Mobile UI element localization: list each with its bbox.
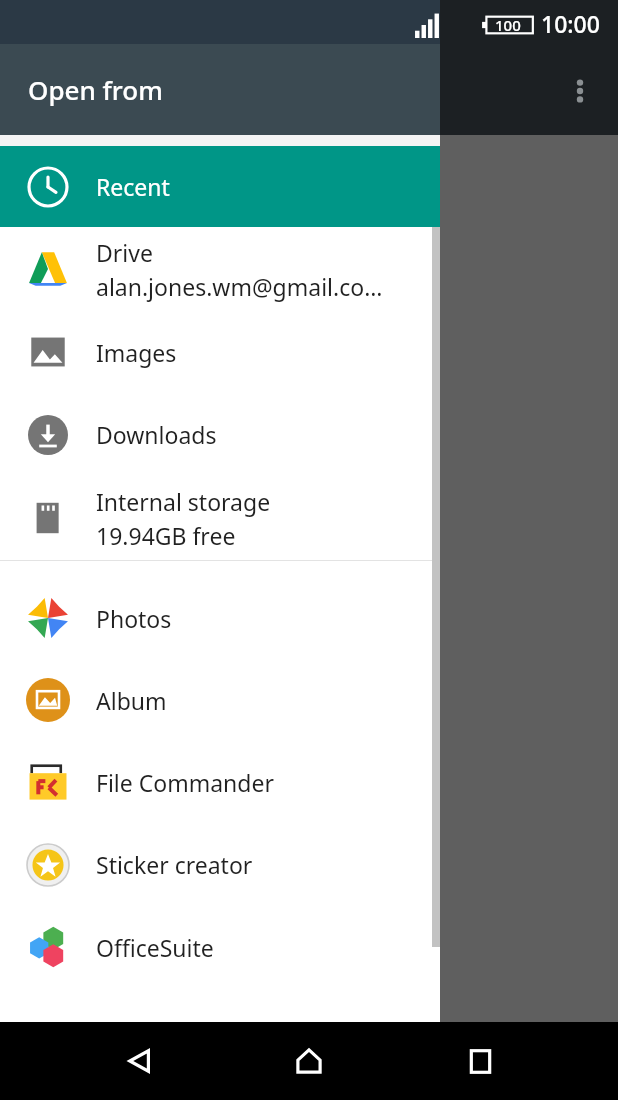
button[interactable]: Recent apps [450,1022,510,1100]
staticText: 100 [495,15,521,35]
button[interactable]: Back [110,1022,170,1100]
button[interactable]: Images [0,311,440,393]
staticText: Open from [28,72,163,107]
staticText: 10:00 [541,8,600,39]
staticText: alan.jones.wm@gmail.co… [96,271,383,302]
button[interactable]: Sticker creator [0,823,440,906]
button[interactable]: Recent [0,146,440,227]
button[interactable]: OfficeSuite [0,906,440,988]
staticText: Images [96,337,177,368]
staticText: Sticker creator [96,849,253,880]
button[interactable]: More options [548,59,612,123]
button[interactable]: Downloads [0,393,440,476]
staticText: File Commander [96,767,274,798]
button[interactable]: Drive [0,227,440,311]
button[interactable]: File Commander [0,741,440,823]
staticText: OfficeSuite [96,932,214,963]
staticText: Internal storage [96,486,271,517]
staticText: 19.94GB free [96,520,236,551]
button[interactable]: Photos [0,577,440,659]
button[interactable]: Internal storage [0,476,440,560]
staticText: Recent [96,171,170,202]
staticText: Album [96,685,167,716]
button[interactable]: Album [0,659,440,741]
staticText: Drive [96,237,153,268]
staticText: Photos [96,603,172,634]
button[interactable]: Home [279,1022,339,1100]
staticText: Downloads [96,419,217,450]
